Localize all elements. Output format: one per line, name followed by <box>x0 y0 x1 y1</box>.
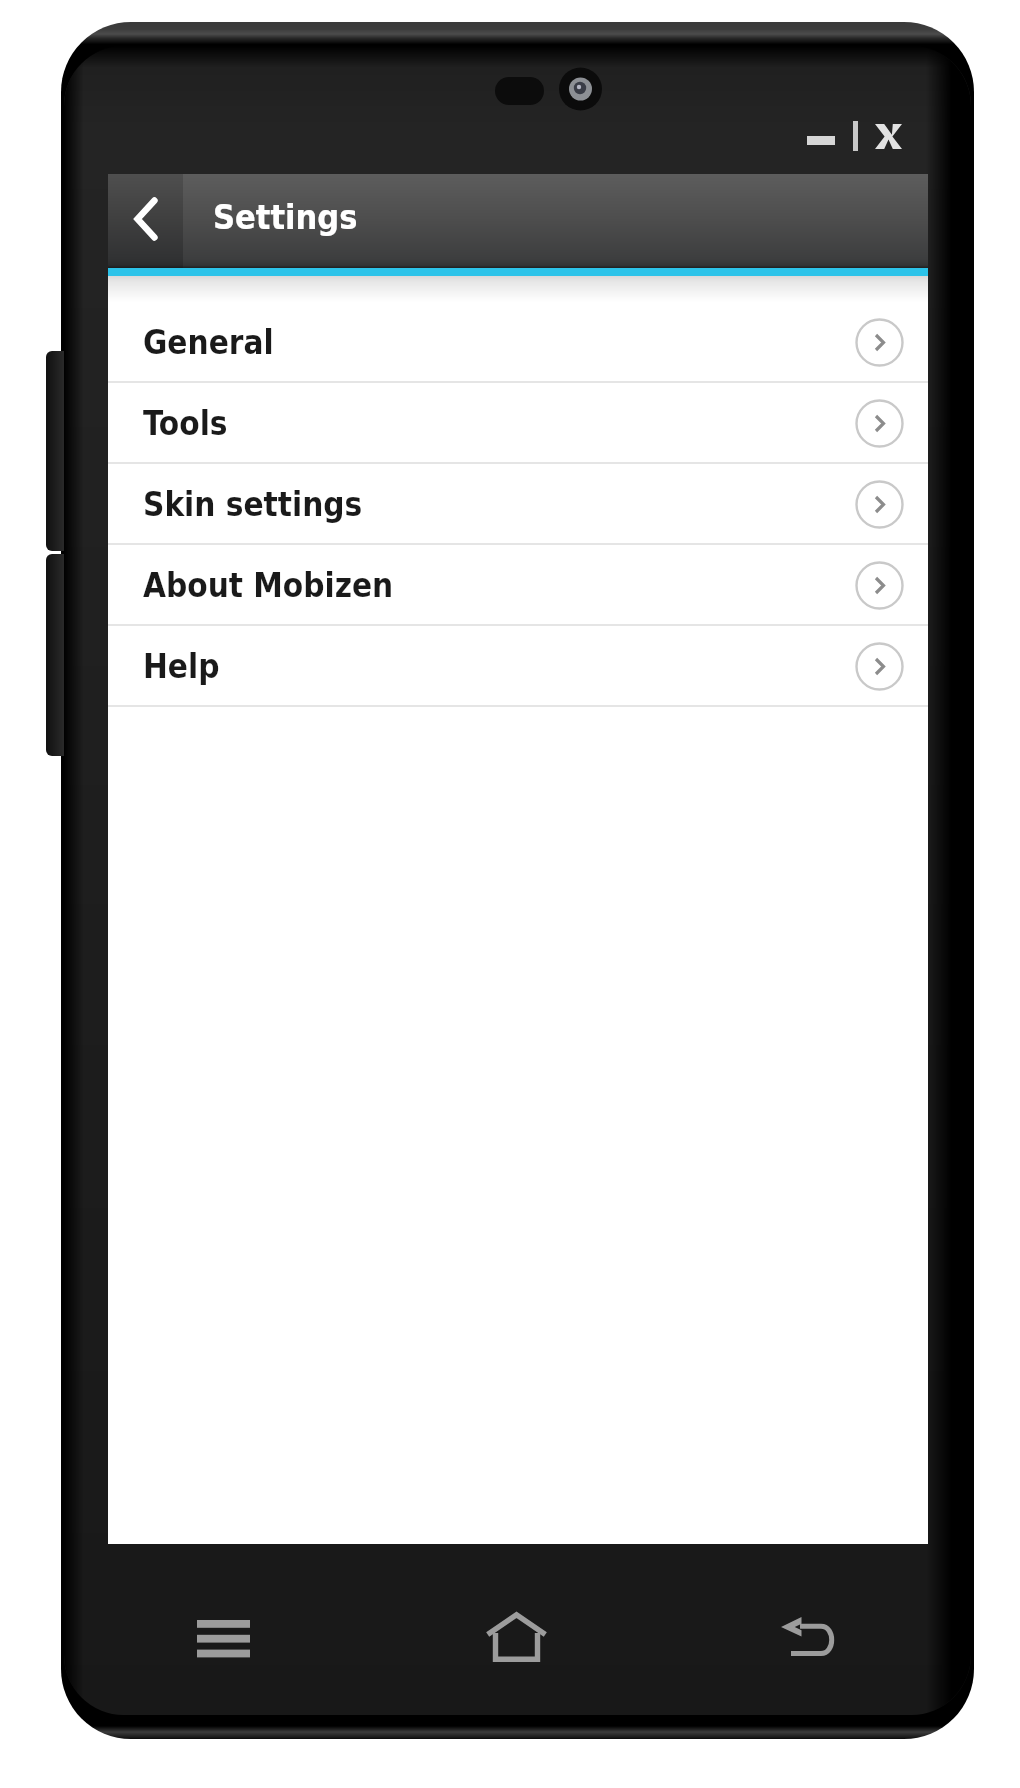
button[interactable]: Back <box>764 1590 856 1686</box>
staticText: Tools <box>143 404 228 442</box>
button[interactable]: Tools <box>108 383 928 464</box>
button[interactable]: Back <box>108 174 183 268</box>
button[interactable]: Home <box>470 1590 562 1686</box>
button[interactable]: Help <box>108 626 928 707</box>
staticText: Help <box>143 647 220 685</box>
button[interactable]: Skin settings <box>108 464 928 545</box>
staticText: Skin settings <box>143 485 363 523</box>
button[interactable]: Menu <box>178 1590 270 1686</box>
button[interactable]: Minimise <box>800 123 842 157</box>
button[interactable]: Close <box>869 112 909 161</box>
button[interactable]: General <box>108 302 928 383</box>
staticText: Settings <box>213 197 358 237</box>
staticText: About Mobizen <box>143 566 394 604</box>
button[interactable]: About Mobizen <box>108 545 928 626</box>
staticText: General <box>143 323 274 361</box>
